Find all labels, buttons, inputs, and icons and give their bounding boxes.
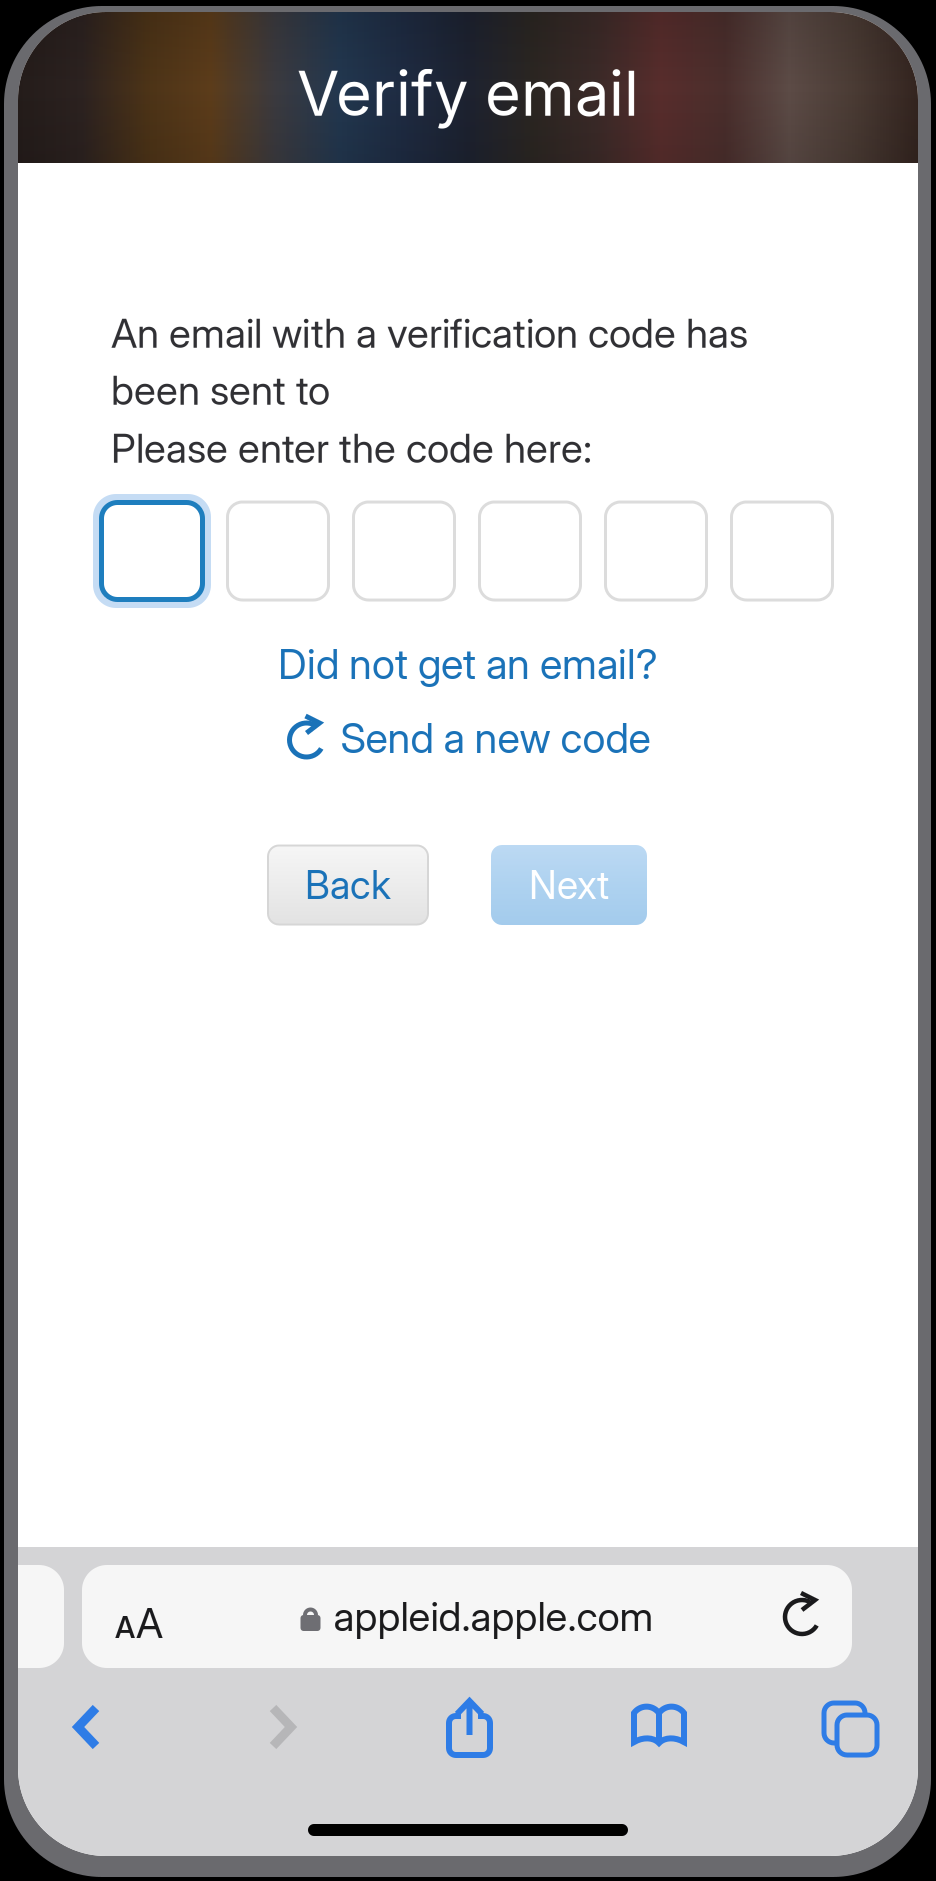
button[interactable]: Next xyxy=(491,845,647,925)
button[interactable]: Address: appleid.apple.com xyxy=(82,1565,852,1668)
button[interactable]: Verification code digit xyxy=(478,494,582,608)
button[interactable]: Share xyxy=(445,1697,494,1759)
staticText: Back xyxy=(305,862,391,908)
button[interactable]: Forward xyxy=(265,1703,299,1751)
staticText: Did not get an email? xyxy=(278,639,658,689)
button[interactable]: Back xyxy=(70,1703,104,1751)
staticText: Verify email xyxy=(297,56,639,131)
staticText: been sent to xyxy=(111,366,330,414)
button[interactable]: Send a new code xyxy=(285,712,650,764)
button[interactable]: Verification code digit xyxy=(352,494,456,608)
staticText: Send a new code xyxy=(340,713,650,763)
button[interactable]: Verification code digit xyxy=(100,494,204,608)
staticText: Please enter the code here: xyxy=(111,424,592,472)
staticText: Next xyxy=(529,862,609,908)
button[interactable]: Tabs xyxy=(818,1697,871,1749)
button[interactable]: Verification code digit xyxy=(226,494,330,608)
staticText: An email with a verification code has xyxy=(111,309,748,357)
button[interactable]: Bookmarks xyxy=(631,1702,687,1748)
staticText: appleid.apple.com xyxy=(333,1592,653,1641)
button[interactable]: Verification code digit xyxy=(604,494,708,608)
button[interactable]: Back xyxy=(268,845,428,924)
button[interactable]: Verification code digit xyxy=(730,494,834,608)
button[interactable]: Did not get an email? xyxy=(278,639,658,689)
staticText: ᴀA xyxy=(115,1598,163,1648)
